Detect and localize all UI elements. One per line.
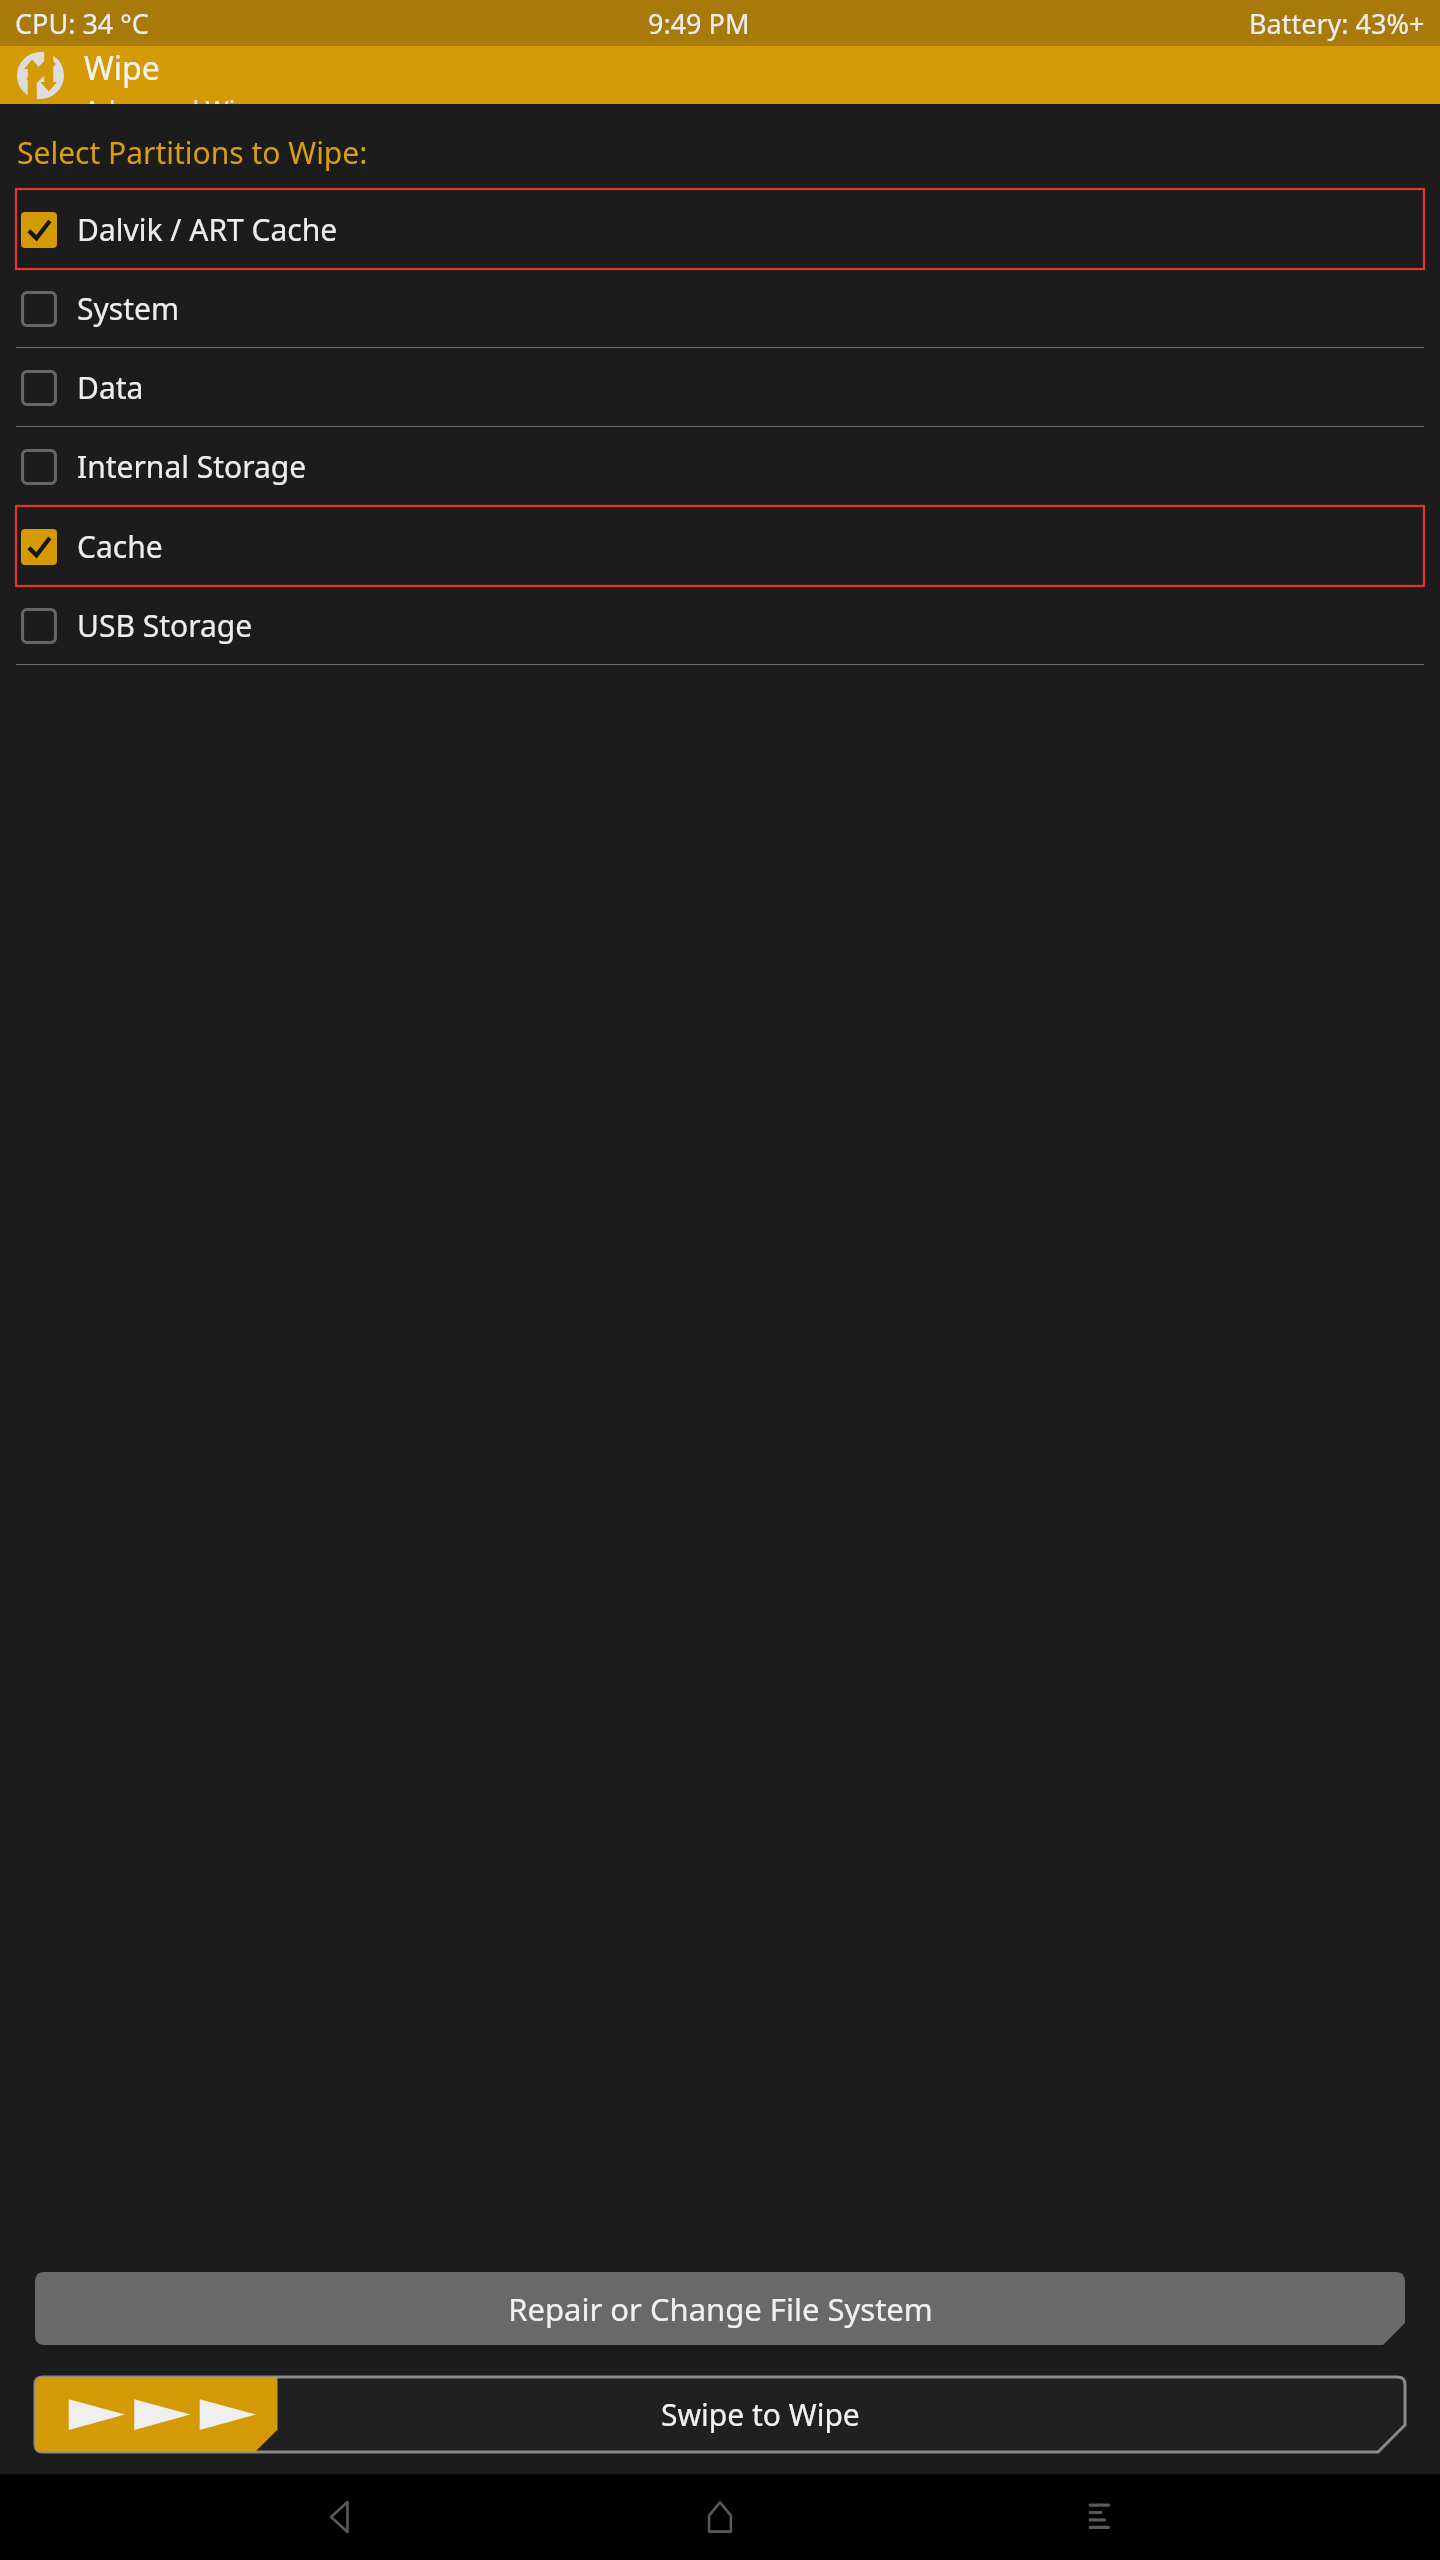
- staticText: Data: [77, 367, 144, 408]
- button[interactable]: USB Storage: [16, 586, 1424, 665]
- staticText: Wipe: [84, 46, 160, 90]
- staticText: USB Storage: [77, 605, 253, 646]
- button[interactable]: Menu: [1062, 2480, 1136, 2554]
- button[interactable]: Back: [305, 2480, 379, 2554]
- staticText: Advanced Wipe: [84, 92, 265, 104]
- staticText: Repair or Change File System: [508, 2288, 933, 2330]
- staticText: Cache: [77, 526, 163, 567]
- button[interactable]: Dalvik / ART Cache: [16, 189, 1424, 269]
- staticText: Swipe to Wipe: [661, 2394, 860, 2435]
- button[interactable]: Data: [16, 348, 1424, 427]
- button[interactable]: Internal Storage: [16, 427, 1424, 506]
- button[interactable]: Cache: [16, 506, 1424, 586]
- button[interactable]: System: [16, 269, 1424, 348]
- staticText: Battery: 43%+: [1249, 5, 1425, 42]
- staticText: 9:49 PM: [648, 5, 750, 42]
- staticText: Internal Storage: [77, 446, 307, 487]
- button[interactable]: Repair or Change File System: [35, 2272, 1405, 2345]
- staticText: Dalvik / ART Cache: [77, 209, 338, 250]
- button[interactable]: Home: [683, 2480, 757, 2554]
- staticText: CPU: 34 °C: [15, 5, 149, 42]
- staticText: System: [77, 288, 179, 329]
- button[interactable]: Wipe: [0, 46, 1440, 104]
- staticText: Select Partitions to Wipe:: [17, 132, 368, 173]
- button[interactable]: Swipe to Wipe: [35, 2377, 1405, 2452]
